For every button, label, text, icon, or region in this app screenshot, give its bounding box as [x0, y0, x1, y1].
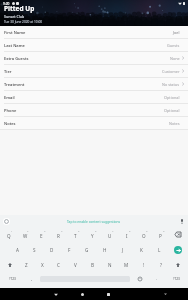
staticText: X — [41, 262, 44, 268]
button[interactable]: K — [132, 242, 150, 257]
staticText: 1 — [11, 229, 13, 232]
button[interactable]: 3 — [33, 227, 50, 242]
button[interactable]: Emoji — [130, 272, 149, 286]
button[interactable]: 9 — [135, 227, 152, 242]
button[interactable]: Treatment — [0, 78, 188, 90]
button[interactable]: 1 — [1, 227, 17, 242]
staticText: E — [40, 233, 43, 239]
staticText: J — [122, 247, 124, 253]
staticText: First Name — [4, 30, 26, 35]
staticText: Notes — [169, 121, 180, 126]
staticText: . — [156, 276, 158, 282]
staticText: Z — [25, 262, 28, 268]
staticText: 6 — [95, 229, 97, 232]
staticText: 9:20 — [3, 2, 10, 6]
staticText: Optional — [164, 95, 180, 100]
staticText: V — [74, 262, 77, 268]
staticText: 3 — [44, 229, 46, 232]
button[interactable]: C — [50, 257, 67, 272]
button[interactable]: ?123 — [1, 272, 24, 286]
button[interactable]: H — [96, 242, 114, 257]
staticText: 8 — [129, 229, 131, 232]
staticText: S — [33, 247, 36, 253]
staticText: Email — [4, 95, 15, 100]
button[interactable]: Voice input — [178, 218, 185, 225]
button[interactable]: V — [67, 257, 84, 272]
staticText: , — [31, 276, 33, 282]
button[interactable]: S — [26, 242, 43, 257]
staticText: Guests — [167, 43, 180, 48]
staticText: R — [57, 233, 60, 239]
button[interactable]: Shift — [1, 257, 18, 272]
staticText: T — [74, 233, 77, 239]
staticText: None — [170, 56, 180, 61]
button[interactable]: Google assistant — [3, 218, 10, 225]
staticText: G — [85, 247, 89, 253]
button[interactable]: Comma — [24, 272, 40, 286]
button[interactable]: G — [78, 242, 96, 257]
staticText: C — [57, 262, 60, 268]
button[interactable]: ? — [152, 257, 169, 272]
staticText: Customer — [162, 69, 180, 74]
staticText: M — [124, 262, 129, 268]
button[interactable]: N — [101, 257, 118, 272]
staticText: Sunset Club — [4, 14, 25, 19]
staticText: Q — [7, 233, 11, 239]
staticText: ?123 — [9, 277, 16, 281]
button[interactable]: Last Name — [0, 39, 188, 51]
button[interactable]: 8 — [118, 227, 135, 242]
staticText: W — [23, 233, 28, 239]
button[interactable]: ! — [135, 257, 152, 272]
staticText: Tue 30 June 2020 at 10:00 — [4, 20, 43, 24]
staticText: 4 — [61, 229, 63, 232]
button[interactable]: F — [60, 242, 78, 257]
button[interactable]: B — [84, 257, 101, 272]
button[interactable]: Hide keyboard — [43, 288, 69, 300]
button[interactable]: Backspace — [169, 227, 187, 242]
button[interactable]: 4 — [50, 227, 67, 242]
staticText: L — [158, 247, 161, 253]
button[interactable]: Extra Guests — [0, 52, 188, 64]
staticText: N — [108, 262, 112, 268]
staticText: U — [108, 233, 112, 239]
staticText: Last Name — [4, 43, 25, 48]
staticText: A — [16, 247, 19, 253]
staticText: Tier — [4, 69, 12, 74]
staticText: K — [140, 247, 143, 253]
staticText: Joel — [173, 30, 180, 35]
button[interactable]: 0 — [152, 227, 169, 242]
button[interactable]: Recent apps — [95, 288, 121, 300]
button[interactable]: First Name — [0, 26, 188, 38]
button[interactable]: 2 — [17, 227, 33, 242]
button[interactable]: 5 — [67, 227, 84, 242]
staticText: B — [91, 262, 94, 268]
button[interactable]: ?123 — [165, 272, 187, 286]
button[interactable]: Home — [69, 288, 95, 300]
button[interactable]: More options — [152, 288, 178, 300]
button[interactable]: Phone — [0, 104, 188, 116]
staticText: No status — [162, 82, 180, 87]
button[interactable]: Shift — [169, 257, 187, 272]
button[interactable]: Email — [0, 91, 188, 103]
staticText: 7 — [112, 229, 114, 232]
staticText: Treatment — [4, 82, 25, 87]
button[interactable]: 6 — [84, 227, 101, 242]
button[interactable]: Enter — [169, 242, 187, 257]
button[interactable]: M — [118, 257, 135, 272]
button[interactable]: L — [150, 242, 168, 257]
button[interactable]: J — [114, 242, 132, 257]
button[interactable]: X — [34, 257, 50, 272]
staticText: H — [103, 247, 107, 253]
staticText: I — [126, 233, 128, 239]
button[interactable]: 7 — [101, 227, 118, 242]
staticText: 5 — [78, 229, 80, 232]
staticText: Pitted Up — [4, 4, 35, 13]
button[interactable]: Z — [18, 257, 34, 272]
button[interactable]: D — [43, 242, 60, 257]
button[interactable]: Notes — [0, 117, 188, 129]
button[interactable]: Tier — [0, 65, 188, 77]
staticText: 2 — [27, 229, 29, 232]
button[interactable]: A — [9, 242, 26, 257]
